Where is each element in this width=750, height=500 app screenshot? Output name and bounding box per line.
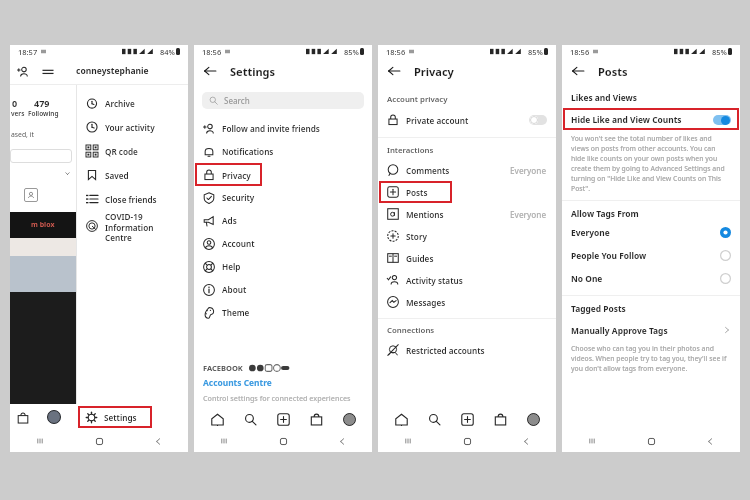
button[interactable]: Posts — [379, 181, 452, 203]
button[interactable]: Messages — [378, 291, 556, 313]
button[interactable]: Back — [681, 430, 740, 452]
button[interactable]: Manually Approve Tags — [562, 320, 740, 340]
staticText: Your activity — [105, 122, 155, 133]
button[interactable]: Create — [267, 408, 300, 430]
staticText: Private account — [406, 115, 469, 126]
staticText: Settings — [104, 412, 137, 423]
button[interactable]: Account — [194, 232, 372, 255]
button[interactable]: COVID-19 — [77, 211, 188, 241]
button[interactable]: Search — [234, 408, 267, 430]
staticText: 18:56 — [570, 47, 590, 57]
button[interactable]: Restricted accounts — [378, 339, 556, 361]
button[interactable]: About — [194, 278, 372, 301]
button[interactable]: Back — [570, 63, 586, 79]
button[interactable]: Home — [384, 408, 418, 430]
staticText: 0 — [12, 97, 18, 109]
staticText: Saved — [105, 170, 129, 181]
button[interactable]: Recents — [194, 430, 254, 452]
staticText: FACEBOOK — [203, 363, 243, 373]
staticText: 85% — [528, 47, 543, 57]
staticText: Allow Tags From — [571, 208, 639, 219]
button[interactable]: Recents — [378, 430, 438, 452]
staticText: Following — [28, 109, 59, 118]
staticText: Notifications — [222, 146, 274, 157]
button[interactable]: Comments — [378, 159, 556, 181]
button[interactable]: No One — [562, 267, 740, 290]
button[interactable]: Your activity — [77, 115, 188, 139]
button[interactable]: QR code — [77, 139, 188, 163]
staticText: ased, it — [11, 130, 34, 139]
button[interactable]: Back — [497, 430, 556, 452]
button[interactable]: Follow and invite friends — [194, 117, 372, 140]
staticText: Search — [224, 95, 250, 106]
button[interactable]: Help — [194, 255, 372, 278]
button[interactable]: Privacy — [195, 163, 262, 186]
button[interactable]: Back — [313, 430, 372, 452]
staticText: Messages — [406, 297, 446, 308]
staticText: Control settings for connected experienc… — [203, 393, 351, 403]
button[interactable]: Guides — [378, 247, 556, 269]
button[interactable]: Shop — [300, 408, 333, 430]
button[interactable]: Home — [200, 408, 234, 430]
button[interactable]: Search — [418, 408, 451, 430]
staticText: Account — [222, 238, 255, 249]
button[interactable]: Recents — [562, 430, 622, 452]
button[interactable]: Create — [451, 408, 484, 430]
button[interactable]: Security — [194, 186, 372, 209]
button[interactable]: Activity status — [378, 269, 556, 291]
button[interactable]: Story — [378, 225, 556, 247]
staticText: Archive — [105, 98, 135, 109]
staticText: Activity status — [406, 275, 463, 286]
staticText: You won't see the total number of likes … — [571, 134, 731, 193]
button[interactable]: Search — [202, 92, 364, 109]
staticText: 18:56 — [386, 47, 406, 57]
button[interactable]: Notifications — [194, 140, 372, 163]
staticText: m blox — [31, 220, 55, 230]
staticText: Everyone — [571, 227, 610, 238]
button[interactable] — [10, 149, 72, 163]
button[interactable]: Back — [129, 430, 188, 452]
button[interactable]: Private account — [378, 109, 556, 131]
staticText: 18:57 — [18, 47, 38, 57]
button[interactable]: Home — [254, 430, 313, 452]
staticText: Story — [406, 231, 427, 242]
button[interactable]: Theme — [194, 301, 372, 324]
staticText: COVID-19 — [105, 211, 143, 222]
button[interactable]: Hide Like and View Counts — [563, 108, 739, 130]
staticText: conneystephanie — [76, 65, 149, 77]
staticText: 85% — [344, 47, 359, 57]
button[interactable]: Profile — [333, 408, 366, 430]
button[interactable]: Archive — [77, 91, 188, 115]
staticText: 18:56 — [202, 47, 222, 57]
button[interactable]: Back — [386, 63, 402, 79]
button[interactable]: Accounts Centre — [203, 377, 272, 388]
button[interactable]: Home — [438, 430, 497, 452]
button[interactable]: Everyone — [562, 221, 740, 244]
button[interactable]: People You Follow — [562, 244, 740, 267]
button[interactable]: Mentions — [378, 203, 556, 225]
button[interactable]: Back — [202, 63, 218, 79]
button[interactable]: Menu — [41, 65, 54, 78]
staticText: Privacy — [222, 170, 251, 181]
staticText: Privacy — [414, 64, 454, 79]
button[interactable]: Home — [70, 430, 129, 452]
staticText: Manually Approve Tags — [571, 325, 668, 336]
button[interactable]: Profile — [517, 408, 550, 430]
button[interactable]: Recents — [10, 430, 70, 452]
button[interactable]: Saved — [77, 163, 188, 187]
button[interactable]: Ads — [194, 209, 372, 232]
button[interactable]: Shop — [484, 408, 517, 430]
button[interactable]: Home — [622, 430, 681, 452]
button[interactable]: Shop — [16, 411, 29, 424]
staticText: vers — [11, 109, 25, 118]
staticText: Ads — [222, 215, 237, 226]
staticText: Account privacy — [387, 94, 448, 105]
staticText: Likes and Views — [571, 92, 637, 103]
staticText: 84% — [160, 47, 175, 57]
button[interactable]: Profile — [47, 410, 61, 424]
staticText: Information Centre — [105, 222, 179, 241]
button[interactable]: Settings — [78, 406, 152, 428]
button[interactable]: Close friends — [77, 187, 188, 211]
staticText: Hide Like and View Counts — [571, 114, 682, 125]
button[interactable]: Add people — [16, 65, 29, 78]
